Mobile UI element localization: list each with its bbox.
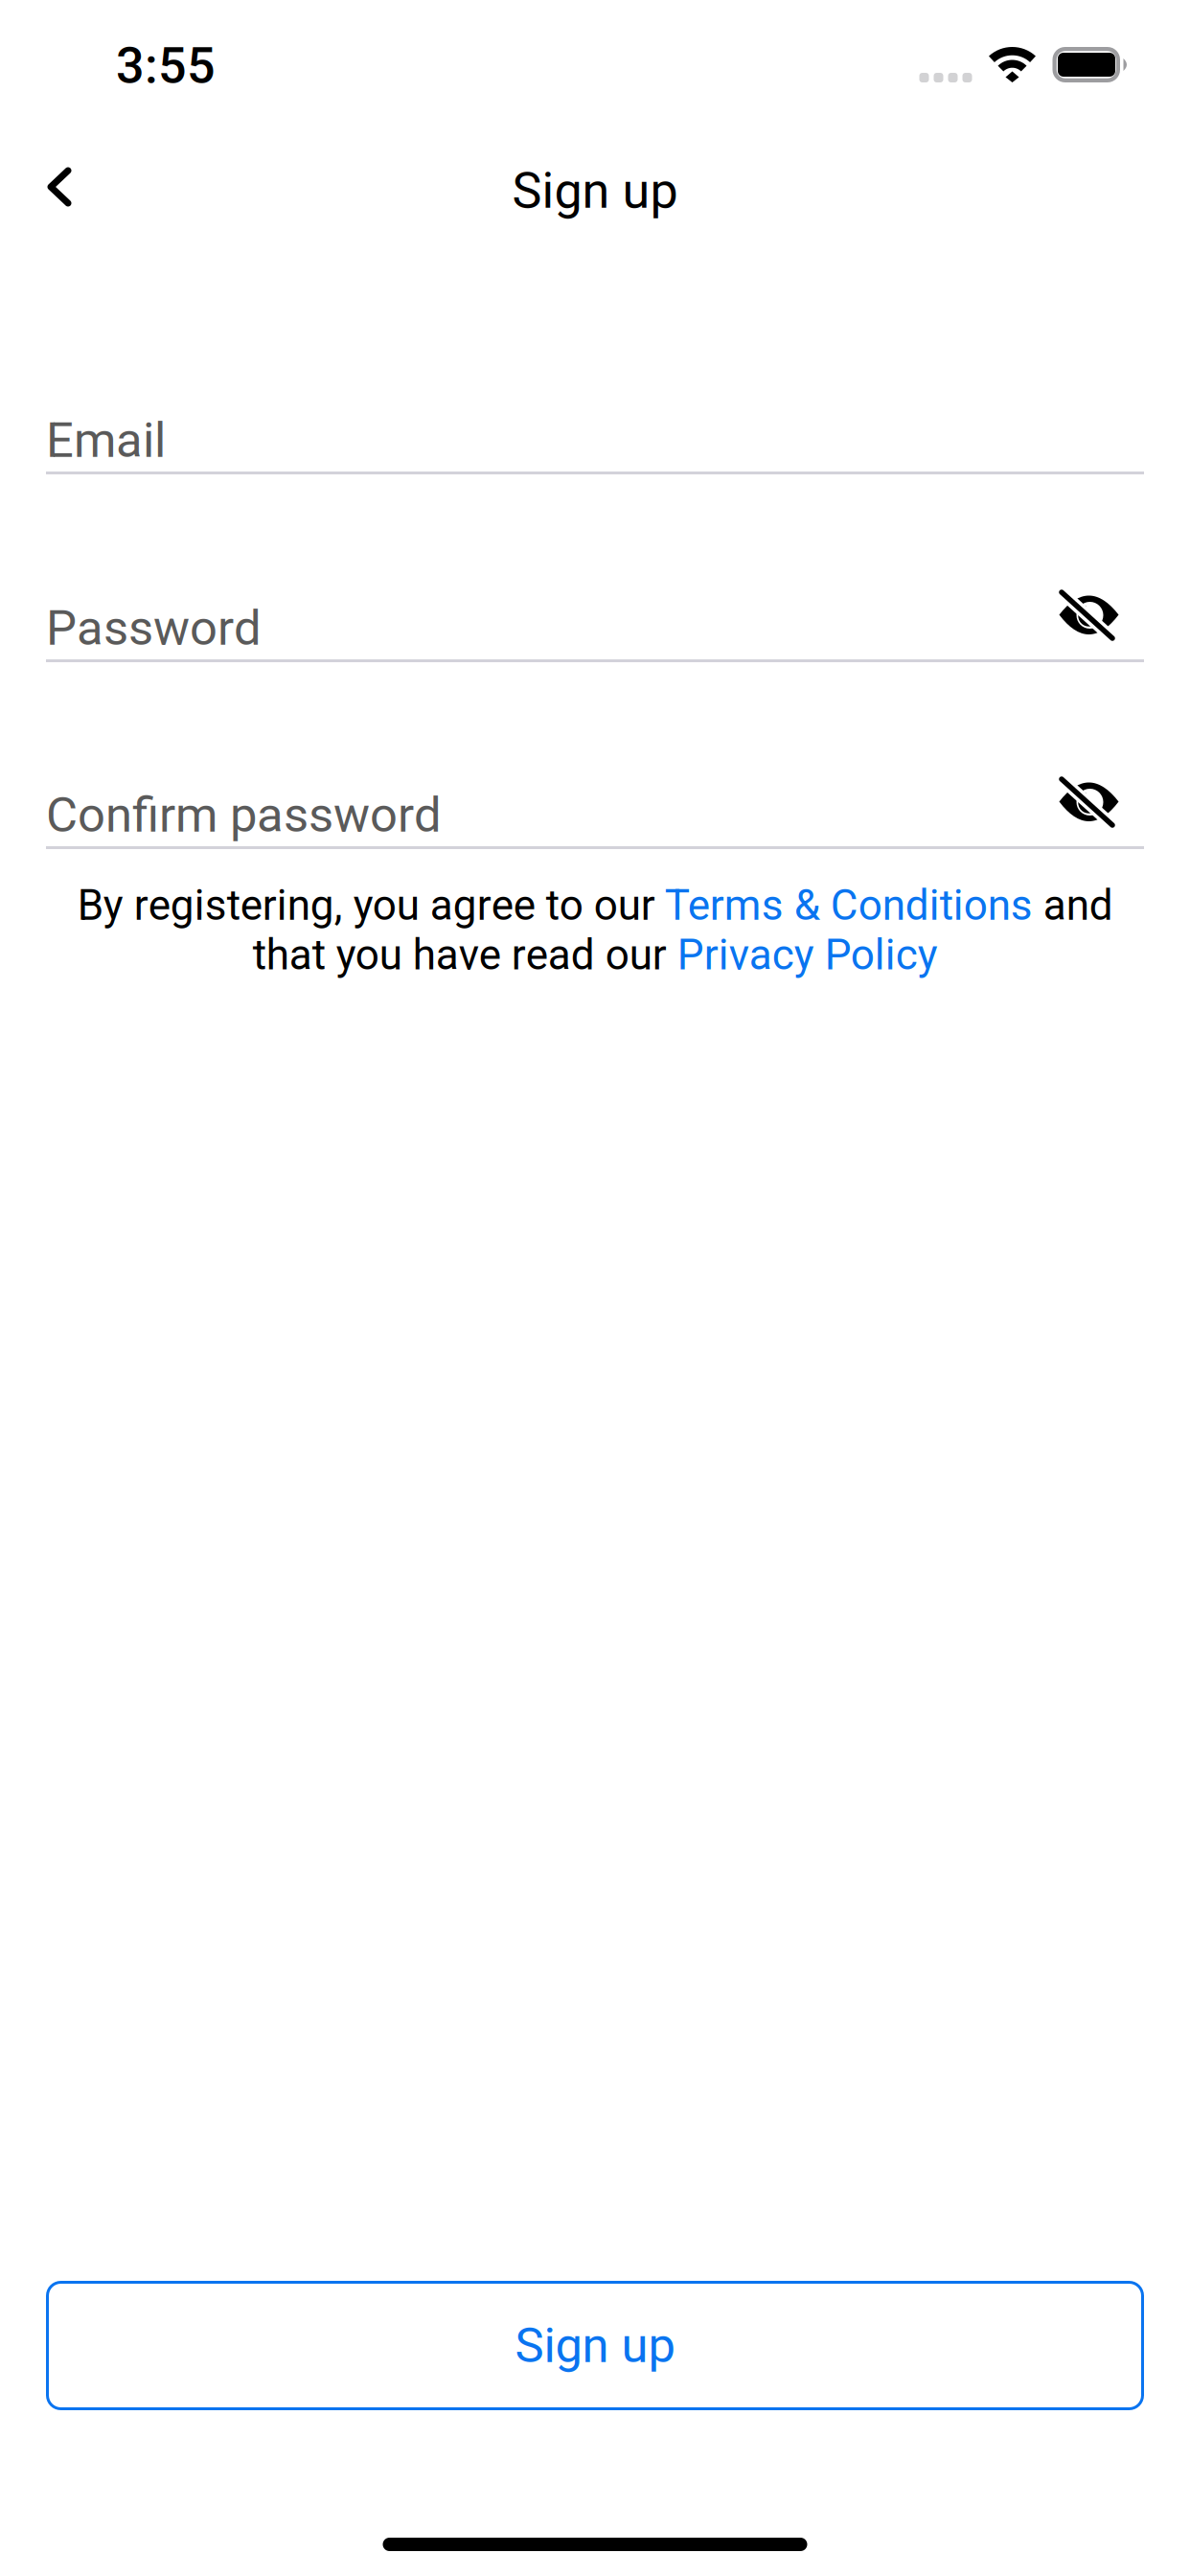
staticText: Sign up [512,161,678,220]
staticText: Confirm password [46,786,442,843]
staticText: Password [46,600,262,656]
button[interactable]: Show Password [1059,589,1144,659]
button[interactable]: Show Confirm password [1059,776,1144,846]
staticText: 3:55 [116,37,216,95]
staticText: Sign up [515,2317,675,2374]
button[interactable]: Sign up [46,2281,1144,2410]
staticText: By registering, you agree to our Terms &… [77,881,1113,980]
button[interactable]: Back [0,133,100,216]
staticText: Email [46,412,166,469]
